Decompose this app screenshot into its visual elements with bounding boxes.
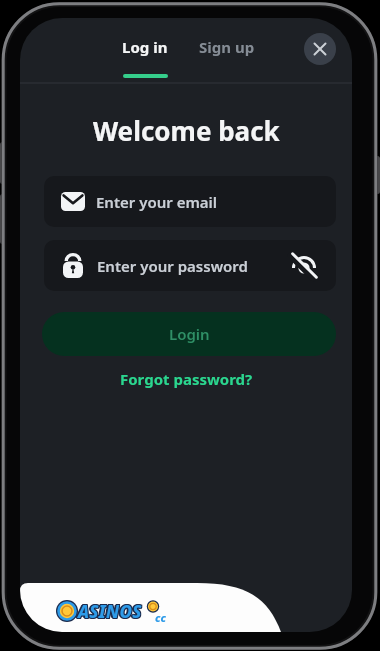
button[interactable]: Forgot password?	[20, 364, 352, 394]
staticText: Enter your password	[97, 256, 248, 276]
staticText: Login	[169, 324, 210, 344]
staticText: ASINOS	[78, 599, 142, 622]
staticText: ASINOS	[78, 601, 142, 624]
button[interactable]: Sign up	[190, 30, 264, 64]
button[interactable]: Enter your password	[44, 240, 336, 291]
button[interactable]	[290, 253, 318, 279]
staticText: ASINOS	[78, 600, 142, 623]
staticText: Welcome back	[93, 113, 280, 148]
staticText: ASINOS	[79, 601, 143, 624]
staticText: Log in	[122, 37, 168, 57]
staticText: Forgot password?	[120, 369, 253, 389]
staticText: ASINOS	[79, 599, 143, 622]
button[interactable]: ASINOS	[50, 596, 190, 628]
button[interactable]: Enter your email	[44, 176, 336, 227]
staticText: ASINOS	[77, 599, 141, 622]
button[interactable]	[304, 33, 336, 65]
staticText: cc	[155, 610, 166, 625]
button[interactable]: Log in	[115, 30, 175, 64]
staticText: ASINOS	[79, 600, 143, 623]
staticText: Sign up	[199, 37, 255, 57]
staticText: Enter your email	[96, 192, 218, 212]
button[interactable]: Login	[42, 312, 336, 356]
staticText: ASINOS	[77, 601, 141, 624]
staticText: ASINOS	[76, 600, 140, 623]
